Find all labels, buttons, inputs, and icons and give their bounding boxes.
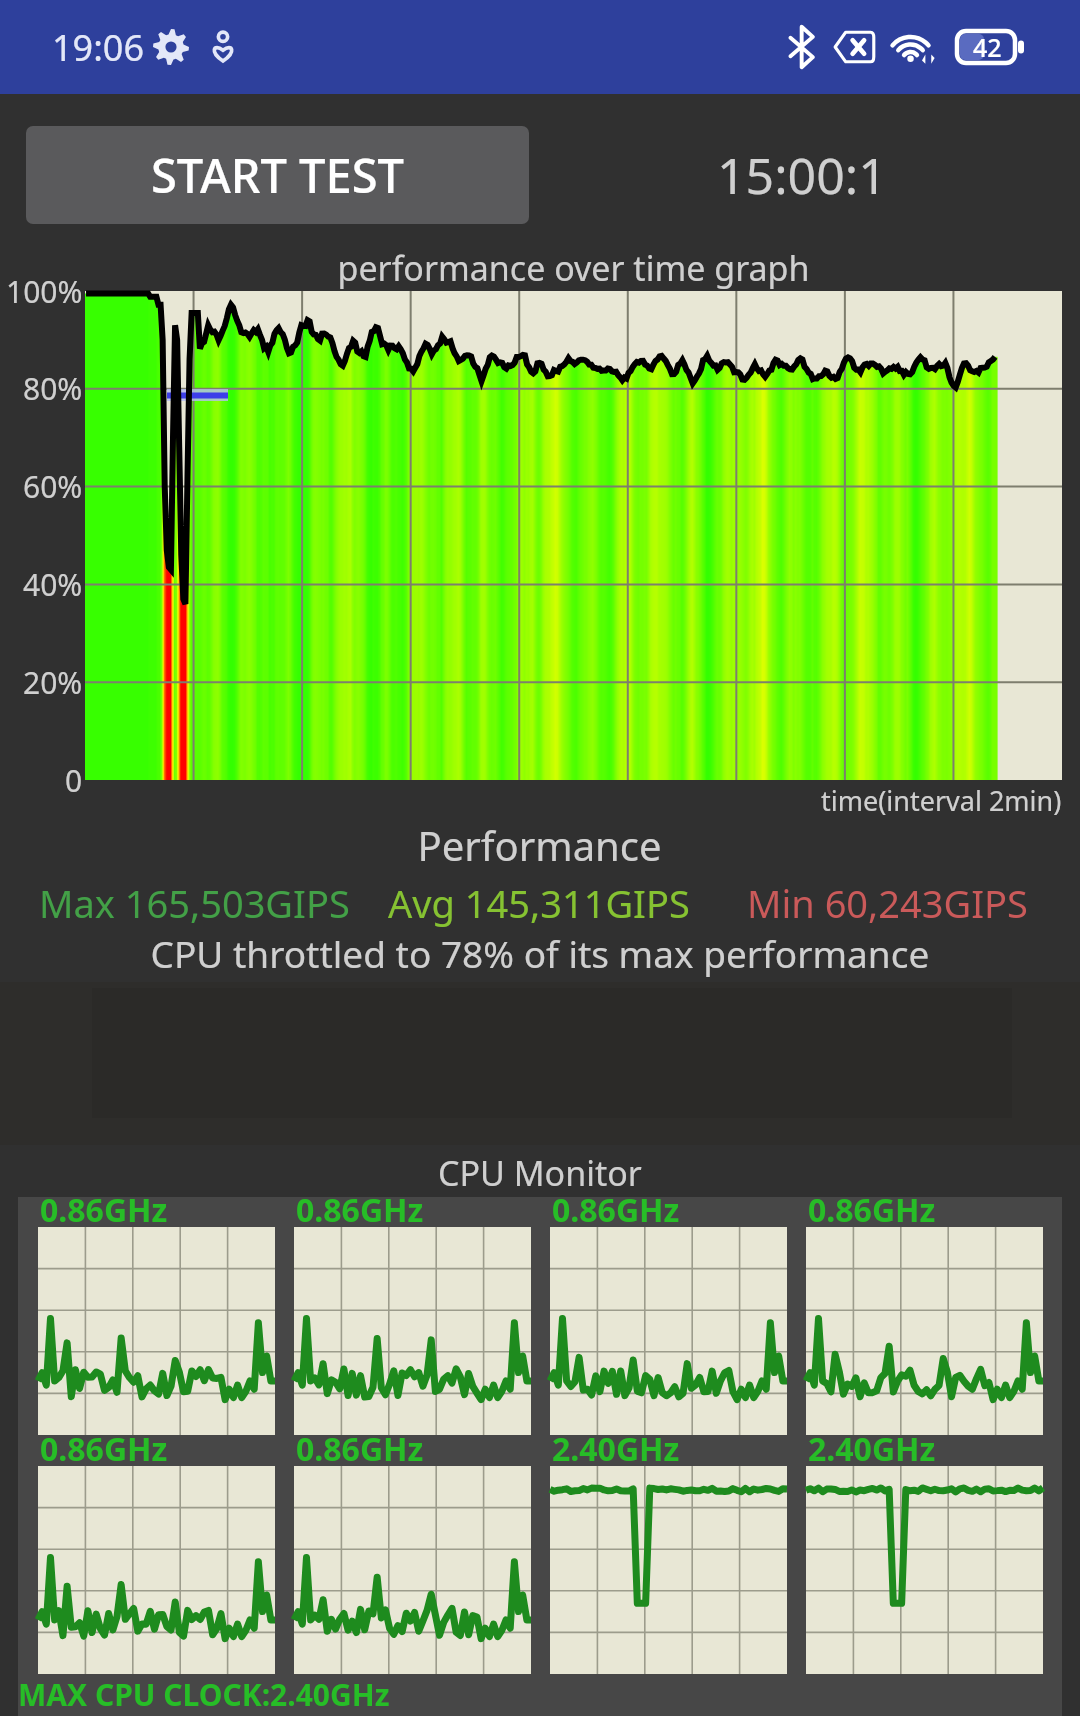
staticText: 15:00:1: [717, 141, 887, 209]
staticText: START TEST: [151, 143, 404, 207]
other: Bluetooth: [785, 24, 819, 70]
staticText: 42: [973, 30, 1002, 64]
button[interactable]: START TEST: [26, 126, 529, 224]
other: No SIM card: [831, 27, 877, 67]
other: Wi-Fi: [887, 26, 943, 68]
staticText: 19:06: [52, 23, 145, 72]
